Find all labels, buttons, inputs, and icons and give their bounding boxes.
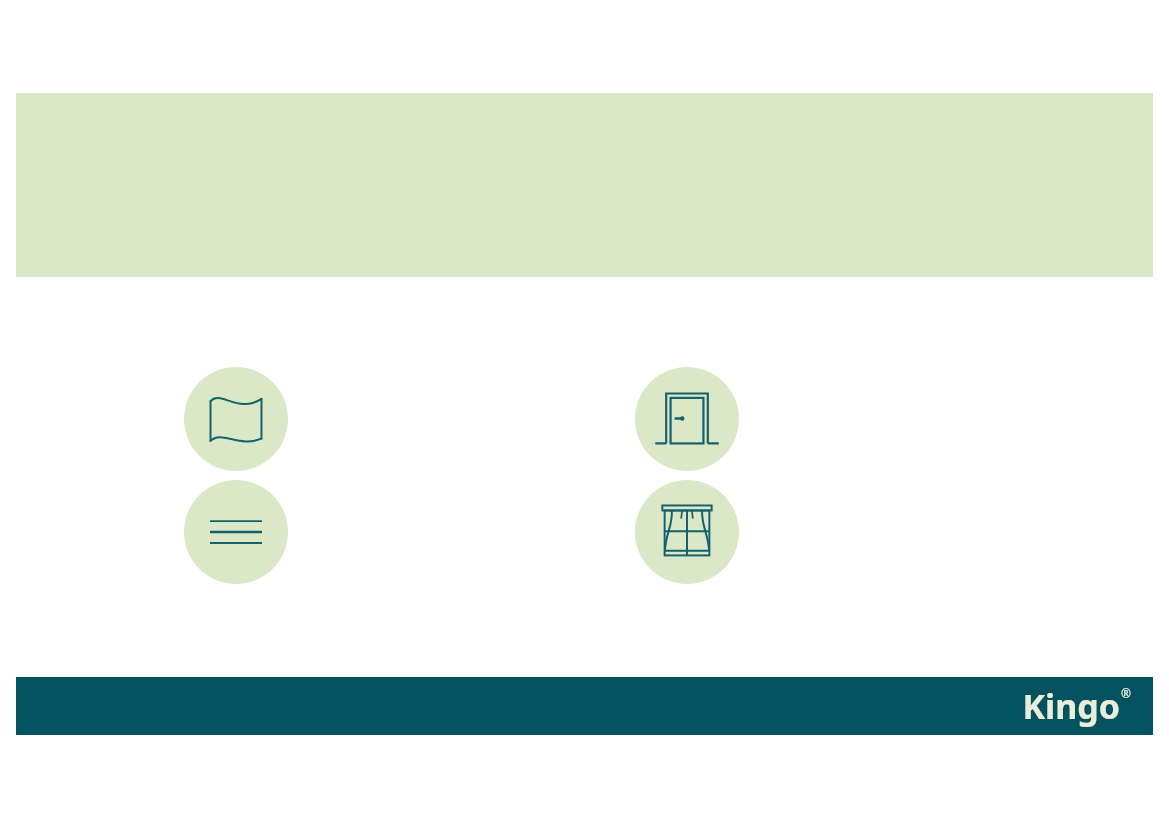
- button[interactable]: Flag: [184, 367, 288, 471]
- staticText: Kingo: [1022, 683, 1120, 729]
- button[interactable]: Window with curtains: [635, 480, 739, 584]
- button[interactable]: Kingo: [16, 677, 1153, 735]
- button[interactable]: Blinds: [184, 480, 288, 584]
- button[interactable]: Door: [635, 367, 739, 471]
- staticText: ®: [1121, 685, 1131, 701]
